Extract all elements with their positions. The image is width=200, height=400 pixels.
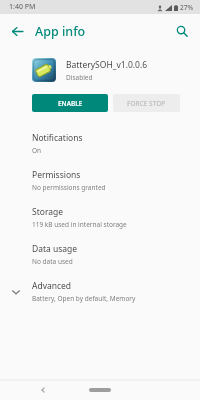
staticText: Data usage (32, 243, 78, 255)
button[interactable]: Data usage (0, 236, 200, 273)
staticText: Storage (32, 206, 64, 218)
staticText: BatterySOH_v1.0.0.6 (66, 59, 148, 71)
button[interactable]: ENABLE (32, 94, 108, 112)
staticText: App info (35, 23, 86, 40)
button[interactable]: Home (87, 384, 113, 396)
staticText: Disabled (66, 73, 93, 82)
staticText: No data used (32, 257, 73, 266)
button[interactable]: Search (170, 19, 194, 43)
button[interactable]: Notifications (0, 125, 200, 162)
staticText: Advanced (32, 280, 72, 292)
staticText: 27% (180, 3, 193, 12)
button[interactable]: Permissions (0, 162, 200, 199)
button[interactable]: Back (5, 19, 29, 43)
staticText: Permissions (32, 169, 81, 181)
button[interactable]: FORCE STOP (113, 94, 180, 112)
staticText: On (32, 146, 42, 155)
staticText: FORCE STOP (127, 99, 166, 108)
staticText: No permissions granted (32, 183, 106, 192)
staticText: 119 kB used in internal storage (32, 220, 127, 229)
staticText: ENABLE (58, 99, 83, 108)
staticText: Notifications (32, 132, 83, 144)
staticText: 1:40 PM (9, 2, 36, 12)
button[interactable]: Advanced (0, 273, 200, 310)
button[interactable]: Storage (0, 199, 200, 236)
staticText: Battery, Open by default, Memory (32, 294, 136, 303)
button[interactable]: Back (34, 381, 52, 399)
